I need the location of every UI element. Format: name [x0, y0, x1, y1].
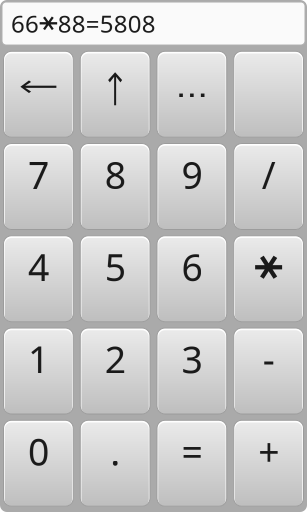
- button[interactable]: Decimal point: [80, 420, 150, 506]
- staticText: 4: [28, 242, 49, 292]
- button[interactable]: 5: [80, 236, 150, 322]
- staticText: /: [262, 150, 276, 199]
- button[interactable]: 1: [3, 328, 73, 414]
- button[interactable]: 9: [157, 143, 227, 229]
- button[interactable]: 8: [80, 143, 150, 229]
- button[interactable]: Plus: [234, 420, 304, 506]
- button[interactable]: 0: [3, 420, 73, 506]
- staticText: 88=5808: [58, 8, 156, 39]
- staticText: 8: [105, 150, 126, 199]
- button[interactable]: 4: [3, 236, 73, 322]
- button[interactable]: 7: [3, 143, 73, 229]
- button[interactable]: Recall previous: [80, 51, 150, 137]
- staticText: +: [258, 426, 279, 476]
- staticText: -: [263, 334, 275, 384]
- button[interactable]: 2: [80, 328, 150, 414]
- button[interactable]: Minus: [234, 328, 304, 414]
- button[interactable]: Divide: [234, 143, 304, 229]
- button[interactable]: 3: [157, 328, 227, 414]
- button[interactable]: More: [157, 51, 227, 137]
- button[interactable]: 6: [157, 236, 227, 322]
- staticText: 9: [181, 150, 202, 199]
- staticText: 1: [28, 334, 49, 384]
- staticText: 6: [181, 242, 202, 292]
- staticText: 5: [105, 242, 126, 292]
- staticText: 2: [105, 334, 126, 384]
- staticText: 0: [28, 426, 49, 476]
- staticText: 3: [181, 334, 202, 384]
- button[interactable]: Backspace: [3, 51, 73, 137]
- button[interactable]: Equals: [157, 420, 227, 506]
- staticText: =: [181, 426, 202, 476]
- staticText: .: [110, 426, 120, 476]
- staticText: 66: [11, 8, 39, 39]
- staticText: 7: [28, 150, 49, 199]
- button[interactable]: [234, 51, 304, 137]
- button[interactable]: Multiply: [234, 236, 304, 322]
